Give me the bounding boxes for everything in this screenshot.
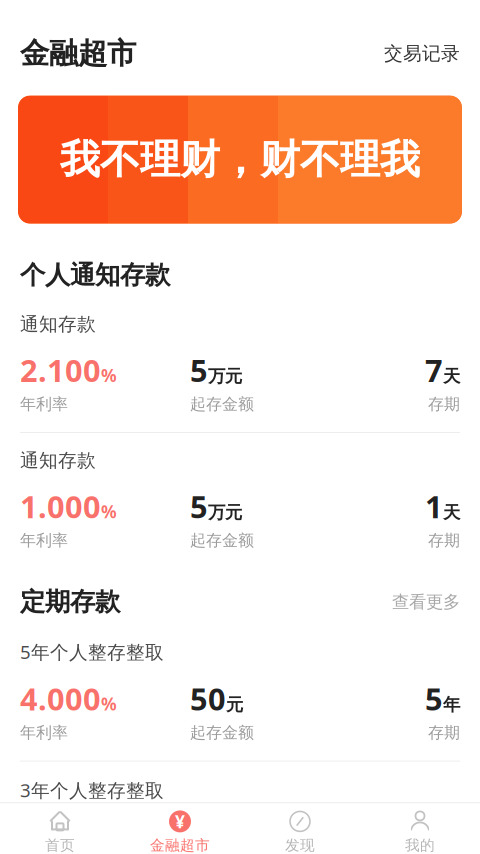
button[interactable]: 我的: [360, 803, 480, 854]
staticText: 5: [190, 350, 208, 390]
button[interactable]: 交易记录: [384, 42, 460, 65]
staticText: ¥: [175, 810, 185, 833]
button[interactable]: 首页: [0, 803, 120, 854]
staticText: 存期: [428, 531, 460, 550]
staticText: 金融超市: [20, 36, 136, 72]
button[interactable]: 发现: [240, 803, 360, 854]
staticText: 万元: [208, 502, 242, 523]
staticText: 年利率: [20, 531, 68, 550]
staticText: 交易记录: [384, 42, 460, 65]
staticText: 年: [443, 694, 460, 715]
staticText: 4.000: [20, 678, 101, 719]
staticText: 万元: [208, 365, 242, 387]
staticText: 发现: [285, 836, 315, 854]
button[interactable]: 5年个人整存整取: [0, 639, 480, 761]
staticText: 通知存款: [20, 449, 96, 472]
staticText: 金融超市: [150, 836, 210, 854]
staticText: 1: [425, 486, 443, 527]
staticText: %: [101, 364, 117, 387]
staticText: 3年个人整存整取: [20, 778, 164, 802]
staticText: 首页: [45, 836, 75, 854]
staticText: 个人通知存款: [20, 260, 170, 291]
staticText: %: [101, 500, 117, 523]
button[interactable]: 通知存款: [0, 313, 480, 432]
staticText: 我不理财，财不理我: [60, 135, 420, 184]
staticText: 2.100: [20, 350, 101, 390]
staticText: 天: [443, 365, 460, 387]
staticText: 我的: [405, 836, 435, 854]
staticText: 1.000: [20, 486, 101, 527]
staticText: 查看更多: [392, 591, 460, 612]
staticText: %: [101, 692, 117, 715]
button[interactable]: ¥: [120, 803, 240, 854]
staticText: 起存金额: [190, 394, 254, 414]
staticText: 天: [443, 502, 460, 523]
staticText: 元: [226, 694, 243, 715]
staticText: 存期: [428, 723, 460, 743]
staticText: 50: [190, 678, 226, 719]
button[interactable]: 我不理财，财不理我: [0, 96, 480, 224]
button[interactable]: 通知存款: [0, 432, 480, 568]
staticText: 5年个人整存整取: [20, 639, 164, 664]
staticText: 存期: [428, 394, 460, 414]
staticText: 年利率: [20, 723, 68, 743]
staticText: 7: [425, 350, 443, 390]
button[interactable]: 查看更多: [392, 591, 460, 612]
staticText: 通知存款: [20, 313, 96, 336]
staticText: 起存金额: [190, 531, 254, 550]
staticText: 5: [425, 678, 443, 719]
staticText: 起存金额: [190, 723, 254, 743]
staticText: 5: [190, 486, 208, 527]
staticText: 年利率: [20, 394, 68, 414]
staticText: 定期存款: [20, 586, 120, 617]
